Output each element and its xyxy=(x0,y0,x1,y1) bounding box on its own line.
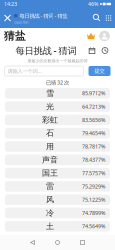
button[interactable]: Leaderboard xyxy=(86,29,96,43)
staticText: 风 xyxy=(46,195,54,205)
staticText: 声音 xyxy=(42,155,58,165)
button[interactable]: Back xyxy=(22,235,43,250)
staticText: 78.7817% xyxy=(82,143,105,150)
staticText: 国王 xyxy=(42,168,58,178)
button[interactable]: 雪 xyxy=(5,88,110,99)
staticText: 提交 xyxy=(94,68,104,74)
button[interactable]: 用 xyxy=(5,141,110,152)
staticText: 土 xyxy=(46,221,54,231)
staticText: 雷 xyxy=(46,181,54,191)
staticText: 用最少的次数猜出一个被藏起的词 xyxy=(27,58,87,63)
button[interactable]: 雷 xyxy=(5,181,110,192)
button[interactable]: 提交 xyxy=(88,66,110,76)
button[interactable]: Recent apps xyxy=(72,235,93,250)
staticText: 75.2929% xyxy=(82,183,105,190)
staticText: 请输入一个词… xyxy=(7,67,41,75)
button[interactable]: History xyxy=(100,45,110,55)
button[interactable]: Search xyxy=(91,8,103,28)
staticText: 猜盐 xyxy=(4,29,26,42)
staticText: 已猜 32 次 xyxy=(46,79,69,86)
button[interactable]: Calendar xyxy=(87,45,97,55)
staticText: 75.1225% xyxy=(82,196,105,203)
button[interactable]: 石 xyxy=(5,128,110,138)
staticText: 79.4654% xyxy=(82,130,105,137)
staticText: 64.7213% xyxy=(82,103,105,110)
staticText: 83.5656% xyxy=(82,116,105,123)
staticText: 每日挑战 - 猜词 - 猜盐 xyxy=(19,12,67,19)
button[interactable]: Account xyxy=(99,29,110,43)
staticText: 雪 xyxy=(46,88,54,98)
staticText: 77.5757% xyxy=(82,170,105,177)
staticText: 14:23 xyxy=(4,0,17,8)
button[interactable]: 声音 xyxy=(5,154,110,165)
staticText: 用 xyxy=(46,142,54,151)
button[interactable]: 风 xyxy=(5,194,110,205)
button[interactable]: More options xyxy=(103,8,114,28)
staticText: 74.7899% xyxy=(82,209,105,217)
button[interactable]: 国王 xyxy=(5,168,110,178)
button[interactable]: Home xyxy=(47,235,68,250)
button[interactable]: 冷 xyxy=(5,208,110,218)
staticText: 74.5649% xyxy=(82,223,105,230)
staticText: 每日挑战 - 猜词 xyxy=(15,44,76,57)
staticText: cyyz.fun xyxy=(14,19,28,24)
button[interactable]: 土 xyxy=(5,221,110,232)
staticText: 46% xyxy=(88,0,98,8)
button[interactable]: Close xyxy=(1,8,14,28)
staticText: 彩虹 xyxy=(42,115,58,125)
staticText: 78.4377% xyxy=(82,156,105,163)
staticText: 石 xyxy=(46,128,54,138)
staticText: 冷 xyxy=(46,208,54,218)
staticText: 光 xyxy=(46,102,54,111)
button[interactable]: 光 xyxy=(5,101,110,112)
staticText: 85.9712% xyxy=(82,90,105,97)
button[interactable]: 彩虹 xyxy=(5,115,110,125)
